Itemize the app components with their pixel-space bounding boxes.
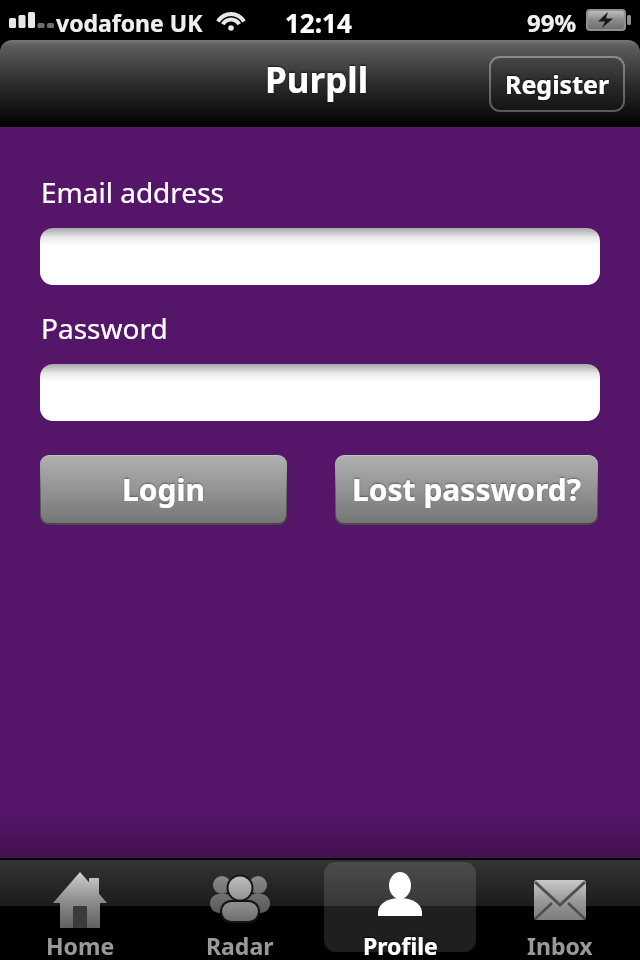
- button[interactable]: Inbox: [480, 858, 640, 960]
- button[interactable]: [40, 364, 600, 421]
- button[interactable]: Register: [491, 58, 623, 110]
- staticText: Password: [41, 309, 168, 347]
- staticText: vodafone UK: [56, 7, 203, 38]
- staticText: Email address: [41, 173, 224, 211]
- staticText: Register: [505, 67, 610, 101]
- staticText: Home: [46, 930, 115, 960]
- staticText: Lost password?: [352, 469, 581, 510]
- staticText: Radar: [206, 930, 274, 960]
- button[interactable]: Lost password?: [336, 456, 597, 523]
- button[interactable]: Radar: [160, 858, 320, 960]
- staticText: Inbox: [527, 930, 593, 960]
- staticText: 99%: [527, 6, 577, 39]
- button[interactable]: Login: [41, 456, 286, 523]
- button[interactable]: Profile: [320, 858, 480, 960]
- staticText: Login: [122, 469, 205, 510]
- staticText: Purpll: [265, 56, 369, 104]
- staticText: 12:14: [285, 5, 352, 40]
- button[interactable]: [40, 228, 600, 285]
- staticText: Profile: [363, 930, 438, 960]
- button[interactable]: Home: [0, 858, 160, 960]
